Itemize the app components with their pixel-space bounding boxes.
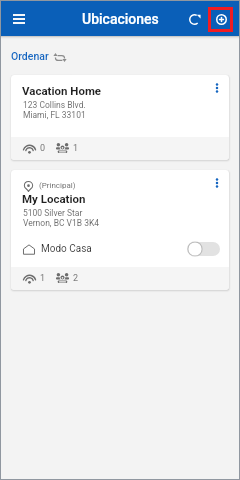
staticText: 0 (40, 143, 46, 154)
button[interactable]: More options (208, 174, 226, 192)
button[interactable]: Modo Casa (11, 236, 229, 262)
staticText: 1 (40, 273, 46, 284)
button[interactable]: More options (208, 79, 226, 97)
button[interactable]: Vacation Home (11, 75, 229, 160)
staticText: Ubicaciones (82, 11, 159, 27)
staticText: 5100 Silver Star (23, 208, 83, 218)
button[interactable]: Refresh (183, 7, 205, 29)
staticText: Vacation Home (22, 84, 102, 97)
staticText: 123 Collins Blvd. (23, 100, 86, 110)
staticText: Vernon, BC V1B 3K4 (23, 218, 100, 228)
button[interactable]: Open navigation menu (7, 7, 31, 31)
staticText: (Principal) (39, 181, 76, 190)
staticText: 1 (73, 143, 79, 154)
staticText: Ordenar (11, 50, 49, 62)
button[interactable]: Modo Casa switch, off (187, 241, 220, 257)
staticText: Miami, FL 33101 (23, 110, 86, 120)
staticText: 2 (73, 273, 79, 284)
button[interactable]: Ordenar (9, 48, 70, 64)
staticText: My Location (22, 192, 86, 205)
button[interactable]: (Principal) (11, 170, 229, 290)
staticText: Modo Casa (41, 243, 92, 255)
button[interactable]: Add location (210, 7, 232, 29)
